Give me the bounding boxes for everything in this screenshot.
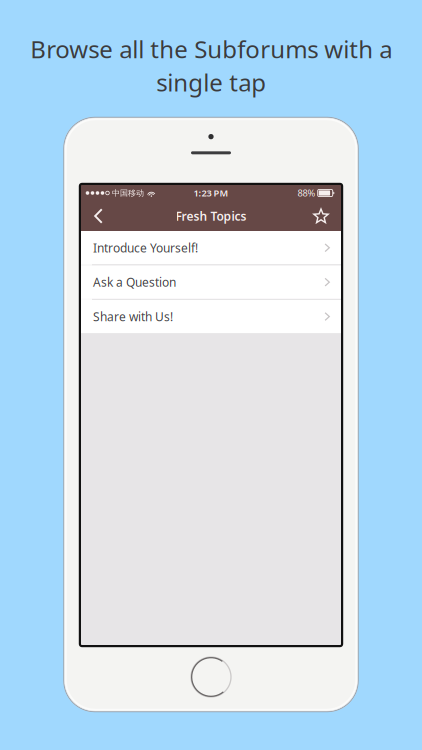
button[interactable]: Back (83, 201, 113, 231)
staticText: 中国移动 (112, 188, 144, 198)
staticText: Fresh Topics (175, 208, 246, 224)
button[interactable]: Favorite (306, 201, 336, 231)
button[interactable]: Share with Us! (81, 300, 341, 333)
staticText: 1:23 PM (193, 187, 228, 199)
staticText: Browse all the Subforums with a single t… (30, 33, 392, 98)
button[interactable]: Introduce Yourself! (81, 231, 341, 264)
button[interactable]: Ask a Question (81, 265, 341, 299)
staticText: Introduce Yourself! (93, 240, 198, 256)
staticText: Share with Us! (93, 309, 173, 324)
staticText: Ask a Question (93, 274, 176, 290)
staticText: 88% (297, 187, 315, 199)
